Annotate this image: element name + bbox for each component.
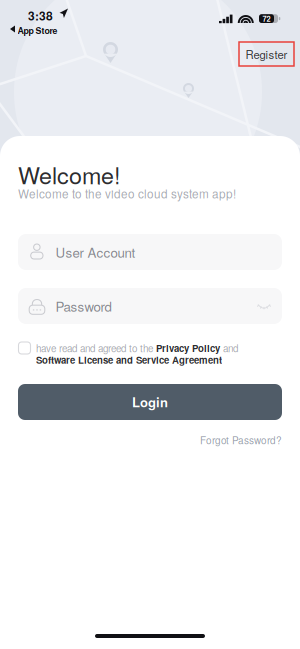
staticText: have read and agreed to the bbox=[36, 341, 156, 355]
staticText: Password bbox=[55, 296, 111, 316]
button[interactable]: Show password bbox=[251, 293, 277, 319]
staticText: and bbox=[220, 341, 238, 355]
button[interactable]: Login bbox=[18, 384, 282, 420]
button[interactable]: Agree to privacy policy bbox=[18, 342, 30, 354]
staticText: Login bbox=[132, 393, 168, 411]
staticText: App Store bbox=[17, 24, 57, 37]
staticText: Forgot Password? bbox=[200, 433, 282, 447]
staticText: Software License and Service Agreement bbox=[36, 353, 222, 367]
staticText: Privacy Policy bbox=[156, 341, 220, 355]
staticText: 3:38 bbox=[28, 7, 53, 24]
staticText: User Account bbox=[55, 242, 135, 262]
button[interactable]: Register bbox=[239, 42, 294, 66]
button[interactable]: Forgot Password? bbox=[182, 433, 282, 447]
staticText: 72 bbox=[262, 13, 270, 24]
staticText: Welcome! bbox=[18, 157, 120, 191]
staticText: Welcome to the video cloud system app! bbox=[18, 185, 236, 202]
staticText: Register bbox=[245, 46, 287, 62]
